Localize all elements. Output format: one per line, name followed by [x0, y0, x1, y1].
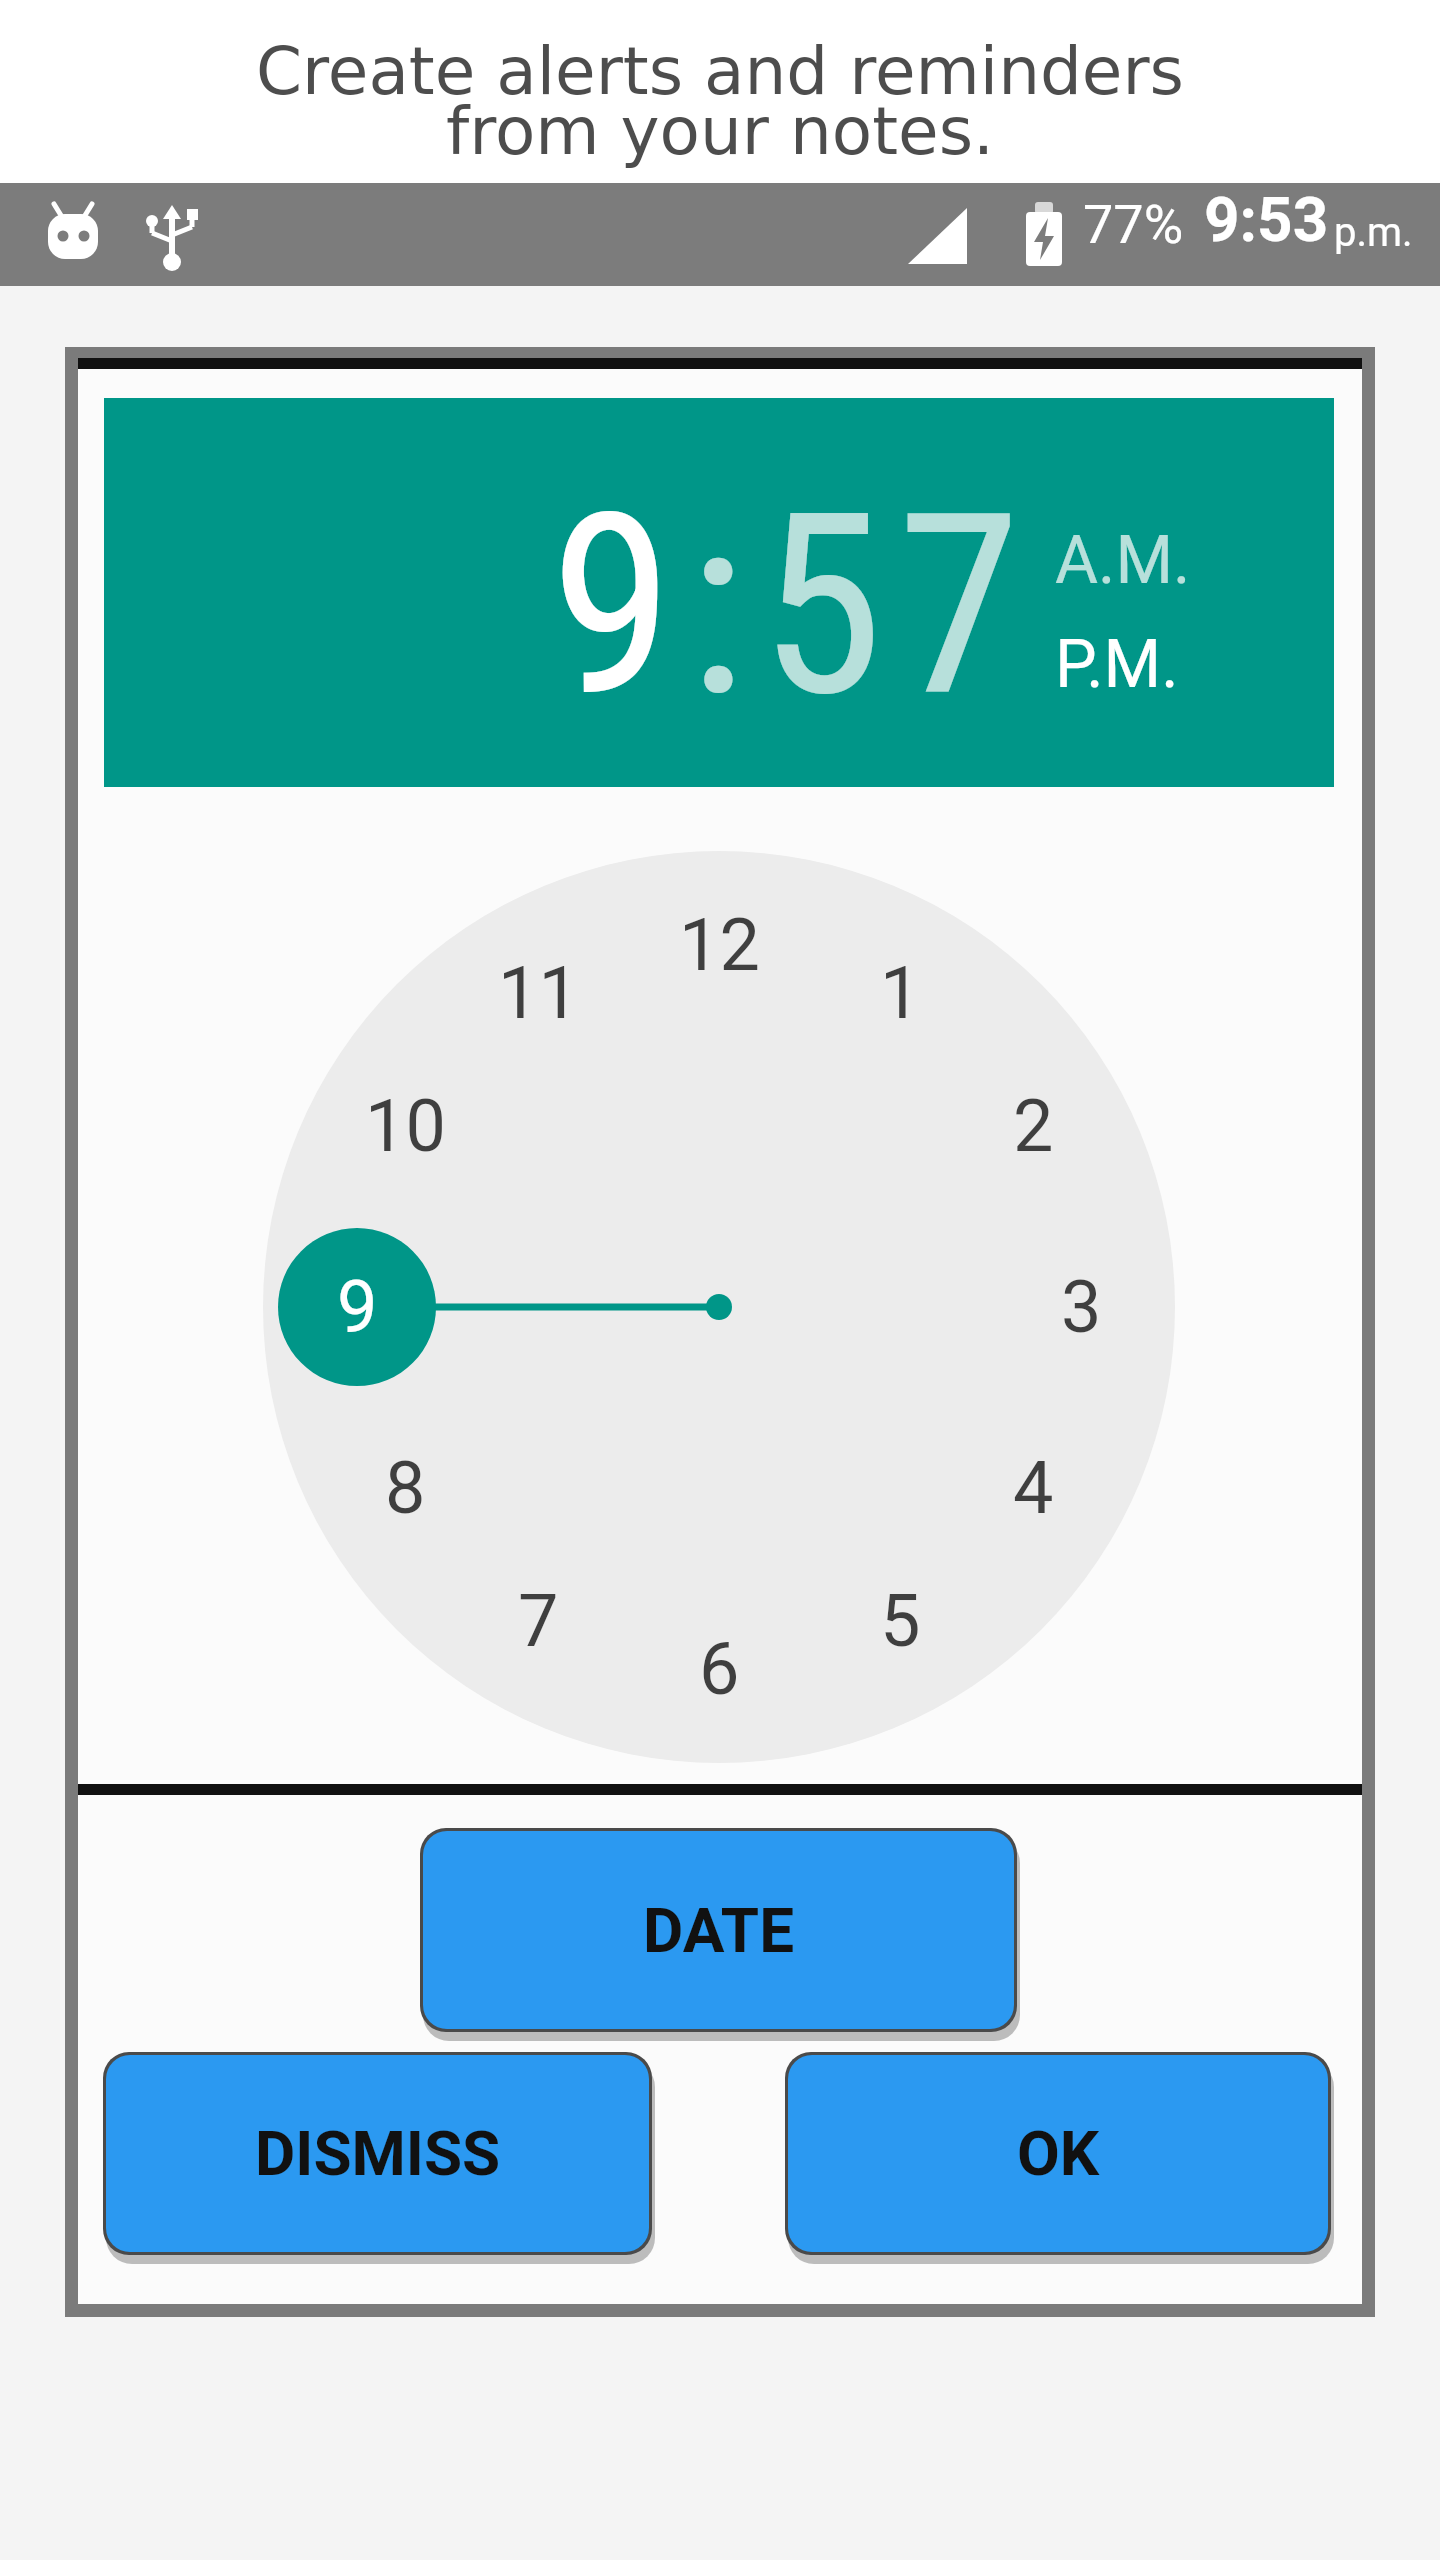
staticText: 3: [1061, 1265, 1102, 1349]
staticText: 8: [385, 1446, 426, 1530]
button[interactable]: DATE: [420, 1828, 1017, 2032]
button[interactable]: OK: [785, 2052, 1331, 2255]
staticText: 9:53: [1204, 183, 1329, 256]
staticText: DISMISS: [255, 2117, 501, 2190]
staticText: 11: [498, 951, 579, 1035]
staticText: 77%: [1083, 193, 1184, 256]
staticText: A.M.: [1055, 522, 1191, 592]
staticText: 4: [1013, 1446, 1054, 1530]
staticText: 12: [679, 903, 760, 987]
staticText: p.m.: [1334, 209, 1413, 256]
staticText: 9:57: [550, 460, 1035, 753]
staticText: 9: [337, 1265, 378, 1349]
staticText: from your notes.: [0, 93, 1440, 170]
staticText: 6: [699, 1627, 740, 1711]
staticText: 7: [518, 1579, 559, 1663]
button[interactable]: A.M.: [1055, 522, 1215, 592]
staticText: 10: [365, 1084, 446, 1168]
staticText: 5: [880, 1579, 921, 1663]
button[interactable]: DISMISS: [103, 2052, 652, 2255]
staticText: P.M.: [1055, 626, 1179, 696]
staticText: 2: [1013, 1084, 1054, 1168]
staticText: Create alerts and reminders: [0, 33, 1440, 110]
staticText: OK: [1017, 2117, 1100, 2190]
staticText: DATE: [643, 1894, 795, 1967]
staticText: 1: [880, 951, 921, 1035]
button[interactable]: P.M.: [1055, 626, 1215, 696]
